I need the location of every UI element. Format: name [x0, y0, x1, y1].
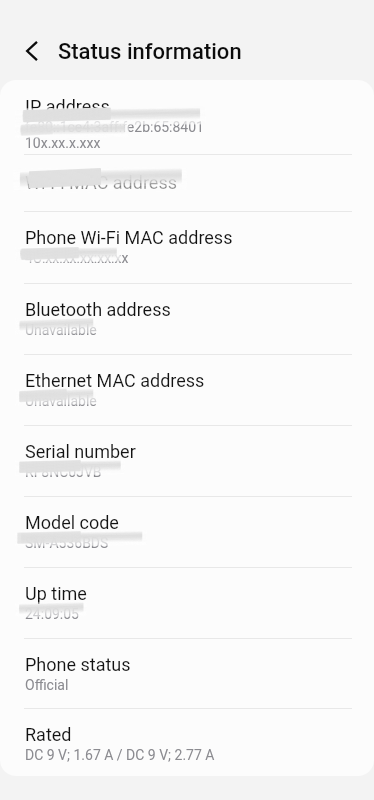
button[interactable]: Rated	[0, 708, 374, 776]
staticText: RF8NC0JVB	[25, 464, 102, 480]
staticText: 10x.xx.x.xxx	[25, 135, 101, 151]
staticText: 24:09:05	[25, 606, 79, 622]
staticText: Phone Wi-Fi MAC address	[25, 227, 233, 248]
staticText: fe80::1ce4:3aff:fe2b:65:8401	[25, 119, 204, 135]
button[interactable]: Phone Wi-Fi MAC address	[0, 211, 374, 283]
staticText: Serial number	[25, 441, 136, 462]
button[interactable]: Up time	[0, 567, 374, 638]
staticText: 4C:xx:xx:xx:xx:xx	[25, 250, 129, 266]
staticText: Wi-Fi MAC address	[25, 172, 177, 193]
staticText: Official	[25, 677, 69, 693]
button[interactable]: IP address	[0, 80, 374, 155]
staticText: Up time	[25, 583, 87, 604]
staticText: Rated	[25, 724, 72, 745]
staticText: Bluetooth address	[25, 299, 171, 320]
staticText: Ethernet MAC address	[25, 370, 205, 391]
button[interactable]: Navigate up	[9, 27, 57, 75]
staticText: Status information	[58, 39, 242, 65]
staticText: IP address	[25, 96, 110, 117]
button[interactable]: Bluetooth address	[0, 283, 374, 354]
button[interactable]: Wi-Fi MAC address	[0, 154, 374, 211]
staticText: Unavailable	[25, 322, 97, 338]
button[interactable]: Ethernet MAC address	[0, 354, 374, 425]
button[interactable]: Phone status	[0, 638, 374, 708]
staticText: SM-A536BDS	[25, 535, 109, 551]
button[interactable]: Model code	[0, 496, 374, 567]
staticText: DC 9 V; 1.67 A / DC 9 V; 2.77 A	[25, 747, 215, 763]
staticText: Phone status	[25, 654, 131, 675]
staticText: Model code	[25, 512, 119, 533]
staticText: Unavailable	[25, 393, 97, 409]
button[interactable]: Serial number	[0, 425, 374, 496]
